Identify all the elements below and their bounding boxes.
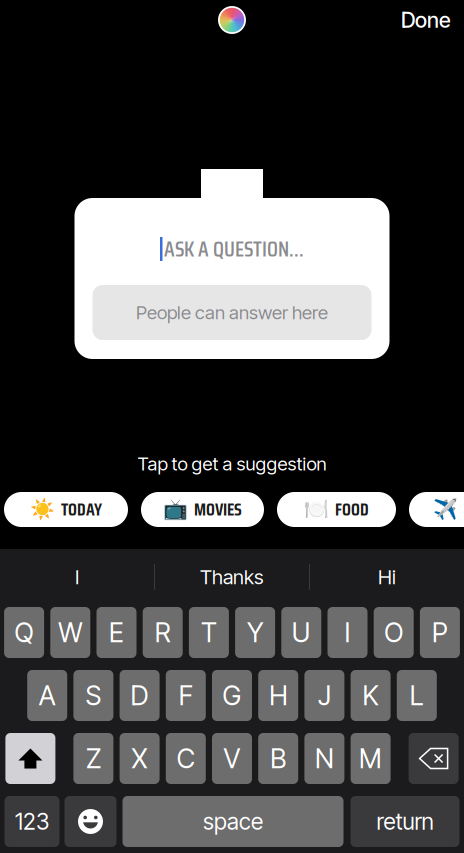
button[interactable]: O (374, 607, 414, 658)
staticText: P (432, 616, 448, 649)
button[interactable]: F (166, 670, 206, 721)
staticText: 📺 (163, 498, 188, 521)
button[interactable]: Color picker (218, 6, 246, 34)
button[interactable]: P (420, 607, 460, 658)
staticText: W (58, 616, 82, 649)
staticText: Z (86, 742, 101, 775)
staticText: ☀️ (30, 498, 55, 521)
staticText: 123 (15, 808, 49, 835)
staticText: Tap to get a suggestion (137, 452, 326, 475)
staticText: People can answer here (136, 301, 328, 324)
button[interactable]: Shift (5, 733, 55, 784)
button[interactable]: return (350, 796, 459, 847)
staticText: D (131, 679, 149, 712)
button[interactable]: I (327, 607, 367, 658)
button[interactable]: ✈️ (409, 492, 464, 527)
button[interactable]: Hi (310, 547, 464, 607)
staticText: M (359, 742, 382, 775)
button[interactable]: Y (235, 607, 275, 658)
button[interactable]: S (73, 670, 113, 721)
staticText: TODAY (61, 496, 102, 523)
button[interactable]: M (351, 733, 391, 784)
staticText: 🍽️ (304, 498, 329, 521)
button[interactable]: I (0, 547, 154, 607)
staticText: V (223, 742, 240, 775)
button[interactable]: 123 (4, 796, 59, 847)
button[interactable]: R (143, 607, 183, 658)
staticText: S (85, 679, 101, 712)
button[interactable]: 📺 (141, 492, 264, 527)
staticText: ✈️ (432, 498, 457, 521)
staticText: G (222, 679, 241, 712)
staticText: F (179, 679, 193, 712)
staticText: R (155, 616, 171, 649)
staticText: T (201, 616, 217, 649)
button[interactable]: T (189, 607, 229, 658)
button[interactable]: H (258, 670, 298, 721)
staticText: A (39, 679, 56, 712)
button[interactable]: Q (4, 607, 44, 658)
staticText: Q (15, 616, 34, 649)
button[interactable]: 🍽️ (277, 492, 396, 527)
staticText: N (315, 742, 334, 775)
button[interactable]: X (120, 733, 160, 784)
staticText: Done (401, 7, 451, 33)
staticText: Y (247, 616, 263, 649)
staticText: space (203, 808, 263, 835)
staticText: Hi (378, 565, 396, 589)
staticText: FOOD (335, 496, 369, 523)
button[interactable]: A (27, 670, 67, 721)
staticText: C (177, 742, 195, 775)
button[interactable]: U (281, 607, 321, 658)
staticText: MOVIES (194, 496, 242, 523)
staticText: return (376, 808, 433, 835)
button[interactable]: Z (73, 733, 113, 784)
staticText: E (109, 616, 124, 649)
button[interactable]: E (96, 607, 136, 658)
button[interactable]: N (304, 733, 344, 784)
button[interactable]: Done (393, 0, 459, 40)
staticText: X (132, 742, 148, 775)
button[interactable]: W (50, 607, 90, 658)
button[interactable]: Emoji keyboard (64, 796, 116, 847)
button[interactable]: Thanks (155, 547, 309, 607)
staticText: Thanks (200, 565, 264, 589)
staticText: I (75, 565, 79, 589)
staticText: O (384, 616, 403, 649)
button[interactable]: L (397, 670, 437, 721)
button[interactable]: ☀️ (4, 492, 128, 527)
button[interactable]: Delete (409, 733, 459, 784)
button[interactable]: V (212, 733, 252, 784)
staticText: K (363, 679, 379, 712)
button[interactable]: D (120, 670, 160, 721)
staticText: H (269, 679, 287, 712)
staticText: B (270, 742, 286, 775)
button[interactable]: C (166, 733, 206, 784)
staticText: U (292, 616, 311, 649)
button[interactable]: G (212, 670, 252, 721)
staticText: ASK A QUESTION... (164, 232, 304, 266)
staticText: L (410, 679, 424, 712)
button[interactable]: K (351, 670, 391, 721)
button[interactable]: J (304, 670, 344, 721)
button[interactable]: B (258, 733, 298, 784)
staticText: J (318, 679, 331, 712)
staticText: I (344, 616, 350, 649)
button[interactable]: space (122, 796, 343, 847)
